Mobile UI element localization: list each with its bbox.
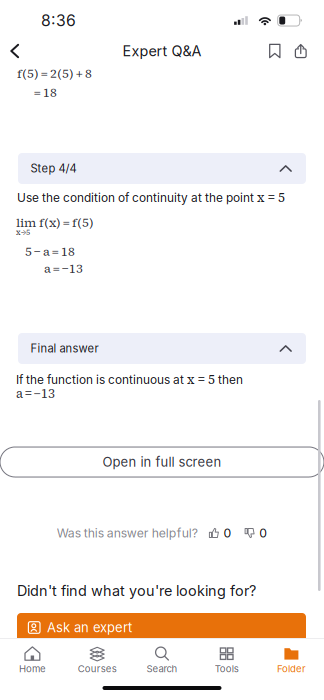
button[interactable]: Back bbox=[5, 37, 31, 65]
staticText: Didn't find what you're looking for? bbox=[17, 582, 256, 599]
staticText: x = 5 bbox=[187, 371, 215, 388]
button[interactable]: Bookmark bbox=[262, 39, 288, 63]
staticText: Open in full screen bbox=[102, 454, 221, 470]
button[interactable]: Search bbox=[130, 640, 194, 674]
staticText: Step 4/4 bbox=[30, 162, 76, 175]
staticText: x→5 bbox=[16, 227, 30, 237]
button[interactable]: Folder bbox=[259, 640, 324, 674]
staticText: Use the condition of continuity at the p… bbox=[17, 190, 257, 205]
button[interactable]: Step 4/4 bbox=[18, 153, 306, 184]
button[interactable]: Courses bbox=[65, 640, 130, 674]
button[interactable]: Open in full screen bbox=[0, 447, 324, 477]
staticText: 0 bbox=[223, 526, 231, 540]
staticText: f(5) = 2(5) + 8 bbox=[17, 65, 92, 82]
staticText: = 18 bbox=[34, 84, 57, 101]
staticText: Courses bbox=[78, 663, 117, 675]
staticText: Search bbox=[146, 663, 177, 675]
staticText: Was this answer helpful? bbox=[57, 526, 198, 540]
staticText: 5 − a = 18 bbox=[25, 243, 75, 260]
button[interactable]: Share bbox=[288, 39, 314, 63]
staticText: 0 bbox=[259, 526, 267, 540]
button[interactable]: Ask an expert bbox=[17, 613, 306, 642]
button[interactable]: 0 bbox=[198, 526, 231, 540]
button[interactable]: Final answer bbox=[18, 333, 306, 364]
staticText: lim bbox=[16, 214, 36, 231]
staticText: then bbox=[215, 372, 243, 387]
staticText: Tools bbox=[215, 663, 239, 675]
staticText: Final answer bbox=[30, 342, 98, 355]
button[interactable]: Tools bbox=[194, 640, 259, 674]
button[interactable]: 0 bbox=[231, 526, 267, 540]
staticText: Home bbox=[19, 663, 46, 675]
staticText: f(x) = f(5) bbox=[36, 214, 94, 231]
staticText: If the function is continuous at bbox=[16, 372, 187, 387]
staticText: a = −13 bbox=[16, 385, 55, 402]
staticText: Ask an expert bbox=[47, 620, 132, 635]
button[interactable]: Home bbox=[0, 640, 65, 674]
staticText: Expert Q&A bbox=[122, 42, 201, 60]
staticText: 8:36 bbox=[41, 11, 76, 30]
staticText: a = −13 bbox=[44, 260, 83, 277]
staticText: x = 5 bbox=[257, 189, 285, 206]
staticText: Folder bbox=[277, 663, 306, 675]
